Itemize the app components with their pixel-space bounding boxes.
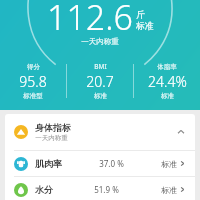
staticText: 标准型	[23, 92, 43, 100]
staticText: 20.7	[86, 72, 114, 91]
staticText: 一天内称重	[81, 37, 119, 46]
staticText: 标准	[161, 92, 174, 100]
staticText: 体脂率	[157, 63, 177, 71]
staticText: 标准	[94, 92, 107, 100]
staticText: 身体指标	[35, 122, 71, 133]
button[interactable]: BMI	[67, 62, 133, 100]
staticText: 51.9 %	[94, 184, 119, 195]
button[interactable]: 得分	[0, 63, 66, 100]
staticText: 水分	[35, 184, 53, 195]
staticText: 斤	[136, 9, 145, 20]
button[interactable]: 肌肉率	[5, 151, 195, 176]
staticText: 95.8	[19, 72, 47, 91]
staticText: 标准	[136, 20, 154, 31]
staticText: 112.6	[47, 0, 133, 40]
staticText: 标准	[161, 159, 177, 169]
button[interactable]: 身体指标	[5, 114, 195, 150]
staticText: 一天内称重	[35, 134, 68, 142]
staticText: 37.0 %	[99, 158, 124, 169]
staticText: 24.4%	[148, 72, 187, 91]
staticText: 肌肉率	[35, 158, 62, 169]
button[interactable]: 水分	[5, 177, 195, 200]
staticText: 标准	[161, 185, 177, 195]
staticText: 得分	[27, 63, 40, 71]
button[interactable]: 体脂率	[134, 63, 200, 100]
staticText: BMI	[94, 62, 107, 71]
